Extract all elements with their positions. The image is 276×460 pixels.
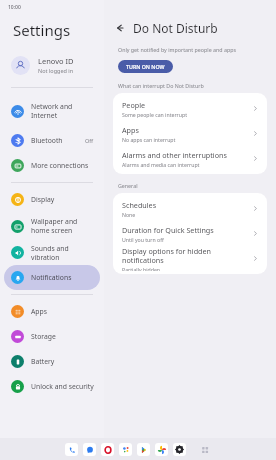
staticText: Battery — [31, 357, 55, 366]
staticText: Do Not Disturb — [133, 20, 218, 36]
button[interactable]: Opera — [101, 443, 114, 456]
button[interactable]: Play Store — [137, 443, 150, 456]
staticText: Only get notified by important people an… — [118, 46, 236, 53]
staticText: Lenovo ID — [38, 56, 74, 66]
button[interactable]: Apps — [4, 299, 100, 324]
staticText: Display — [31, 195, 55, 204]
staticText: Wallpaper and home screen — [31, 217, 94, 235]
staticText: Duration for Quick Settings — [122, 225, 214, 235]
staticText: Storage — [31, 332, 56, 341]
button[interactable]: Wallpaper and home screen — [4, 212, 100, 240]
button[interactable]: Storage — [4, 324, 100, 349]
staticText: Alarms and media can interrupt — [122, 161, 200, 168]
button[interactable]: People — [113, 96, 267, 121]
staticText: Unlock and security — [31, 382, 94, 391]
button[interactable]: Alarms and other interruptions — [113, 146, 267, 171]
button[interactable]: Messages — [83, 443, 96, 456]
button[interactable]: Phone — [65, 443, 78, 456]
staticText: Notifications — [31, 273, 72, 282]
button[interactable]: Display options for hidden notifications — [113, 246, 267, 271]
button[interactable]: Duration for Quick Settings — [113, 221, 267, 246]
staticText: More connections — [31, 161, 89, 170]
button[interactable]: Apps — [113, 121, 267, 146]
staticText: General — [118, 182, 138, 189]
staticText: Some people can interrupt — [122, 111, 188, 118]
staticText: Off — [85, 137, 94, 144]
button[interactable]: Sounds and vibration — [4, 240, 100, 265]
staticText: People — [122, 100, 146, 110]
staticText: Apps — [31, 307, 47, 316]
staticText: Sounds and vibration — [31, 244, 94, 262]
staticText: Settings — [13, 20, 71, 40]
staticText: 10:00 — [8, 4, 21, 11]
button[interactable]: Lenovo ID — [0, 50, 104, 80]
button[interactable]: TURN ON NOW — [118, 60, 173, 73]
staticText: No apps can interrupt — [122, 136, 176, 143]
button[interactable]: Bluetooth — [4, 128, 100, 153]
button[interactable]: All apps — [198, 443, 211, 456]
staticText: Bluetooth — [31, 136, 63, 145]
button[interactable]: Settings — [173, 443, 186, 456]
staticText: Apps — [122, 125, 139, 135]
button[interactable]: Assistant — [119, 443, 132, 456]
staticText: Display options for hidden notifications — [122, 246, 252, 265]
button[interactable]: Unlock and security — [4, 374, 100, 399]
button[interactable]: Schedules — [113, 196, 267, 221]
button[interactable]: Battery — [4, 349, 100, 374]
button[interactable]: Back — [112, 20, 128, 36]
button[interactable]: Network and Internet — [4, 94, 100, 128]
staticText: What can interrupt Do Not Disturb — [118, 82, 204, 89]
button[interactable]: Display — [4, 187, 100, 212]
button[interactable]: Notifications — [4, 265, 100, 290]
staticText: None — [122, 211, 136, 218]
button[interactable]: More connections — [4, 153, 100, 178]
staticText: TURN ON NOW — [126, 63, 165, 70]
staticText: Network and Internet — [31, 102, 94, 120]
staticText: Schedules — [122, 200, 157, 210]
staticText: Not logged in — [38, 67, 74, 74]
staticText: Alarms and other interruptions — [122, 150, 227, 160]
staticText: Until you turn off — [122, 236, 164, 243]
staticText: Partially hidden — [122, 266, 161, 271]
button[interactable]: Photos — [155, 443, 168, 456]
